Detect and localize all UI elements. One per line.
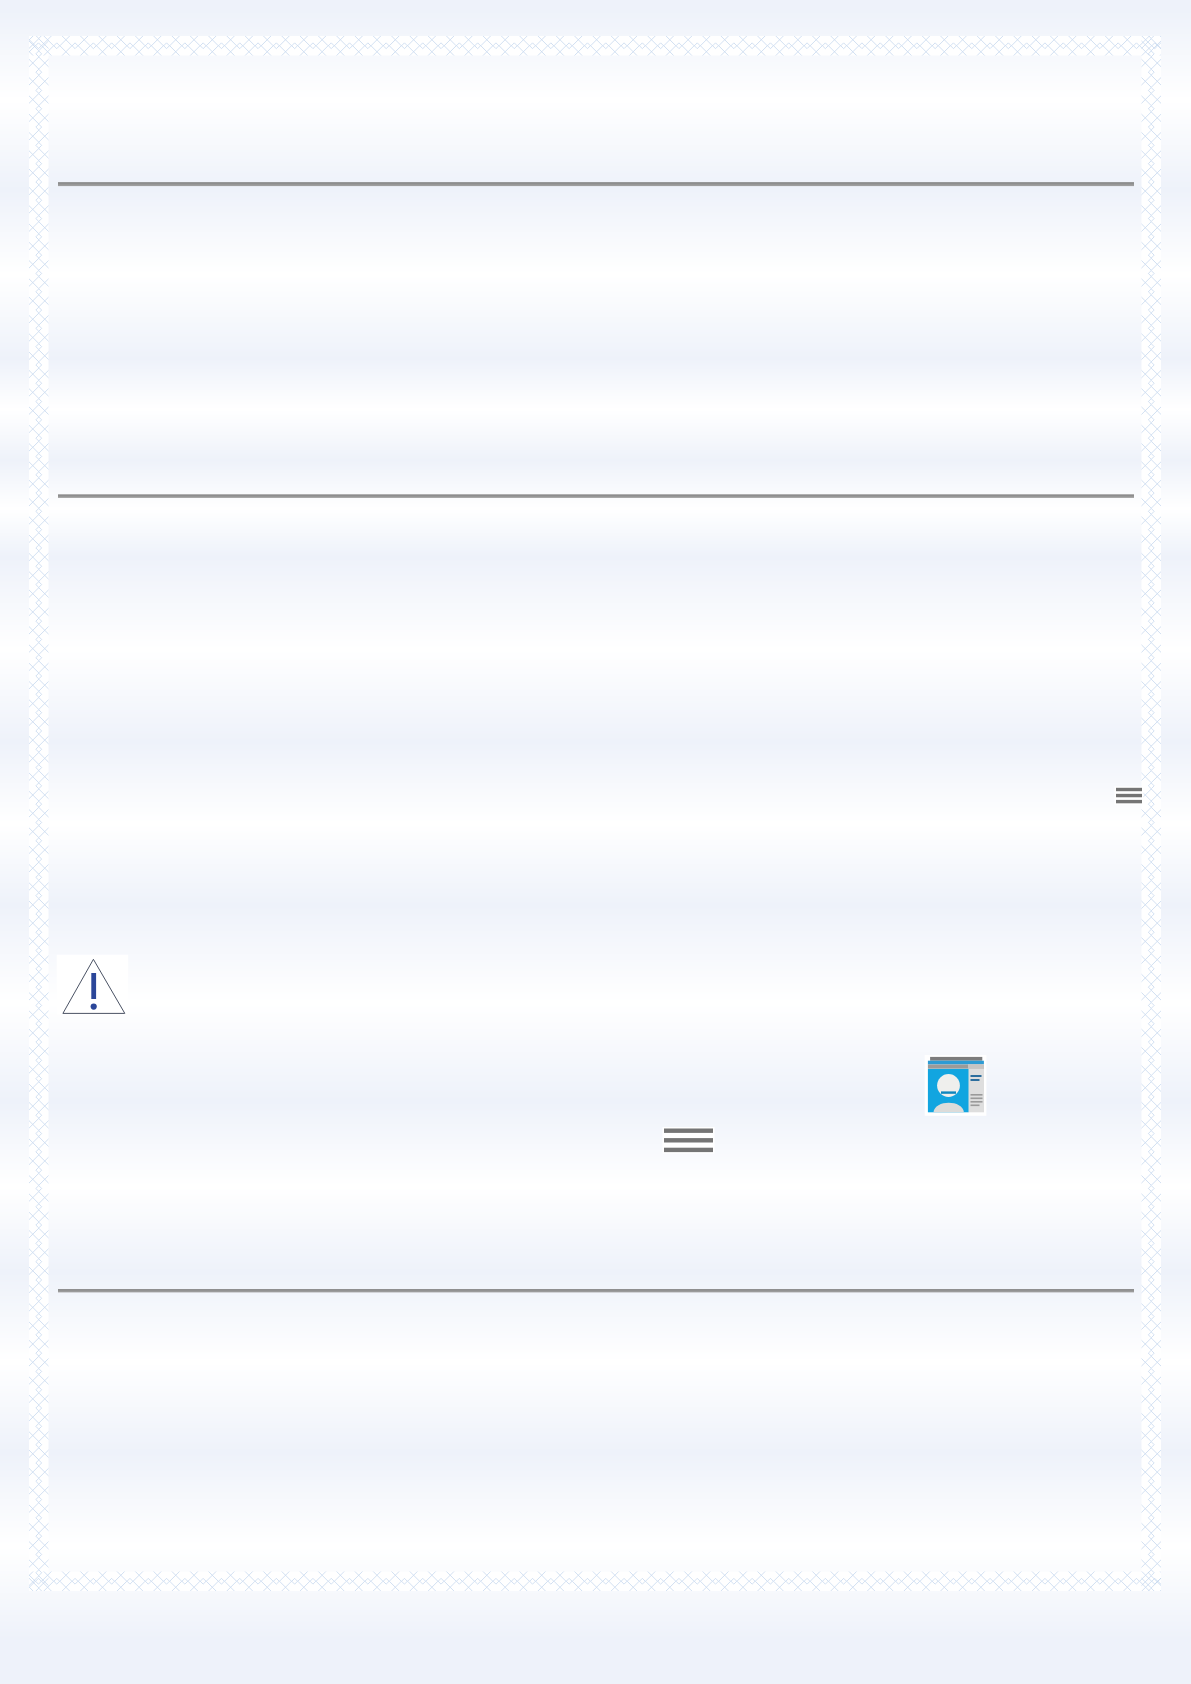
button[interactable]: Menu <box>659 1124 718 1152</box>
button[interactable]: Warning <box>57 955 129 1015</box>
button[interactable]: Contact card <box>925 1055 987 1116</box>
button[interactable]: Menu <box>1111 783 1147 808</box>
